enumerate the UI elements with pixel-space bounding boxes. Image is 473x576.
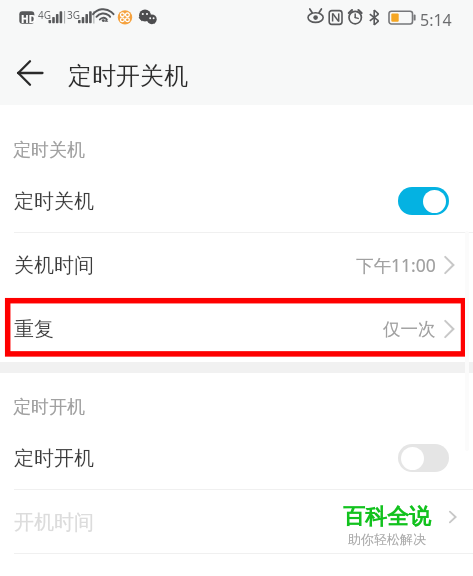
staticText: 定时开机 — [13, 396, 85, 419]
button[interactable]: 开机时间 — [0, 490, 473, 554]
staticText: 仅一次 — [383, 318, 436, 340]
button[interactable]: 定时开机 — [0, 426, 473, 490]
staticText: 5:14 — [420, 9, 452, 31]
staticText: HD — [21, 12, 36, 26]
button[interactable]: Back — [14, 57, 46, 89]
staticText: 助你轻松解决 — [348, 531, 426, 547]
button[interactable]: 定时关机 — [0, 169, 473, 233]
button[interactable]: Switch off — [398, 444, 449, 472]
button[interactable]: 关机时间 — [0, 233, 473, 297]
staticText: 3G — [67, 8, 80, 22]
staticText: 下午11:00 — [356, 253, 436, 277]
staticText: 开机时间 — [14, 510, 94, 535]
staticText: 4G — [38, 8, 51, 22]
staticText: 定时开关机 — [68, 61, 188, 91]
staticText: 定时关机 — [14, 189, 94, 214]
staticText: 重复 — [14, 317, 54, 342]
staticText: 百科全说 — [343, 503, 431, 531]
button[interactable]: Switch on — [398, 187, 449, 215]
staticText: 关机时间 — [14, 253, 94, 278]
button[interactable]: 重复 — [0, 297, 473, 361]
staticText: 定时关机 — [13, 139, 85, 162]
staticText: 定时开机 — [14, 446, 94, 471]
